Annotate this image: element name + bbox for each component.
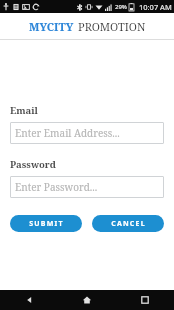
staticText: 29% xyxy=(115,3,127,11)
staticText: Password xyxy=(10,158,56,171)
button[interactable]: CANCEL xyxy=(92,215,164,232)
staticText: 10:07 AM xyxy=(139,2,172,12)
staticText: MYCITY xyxy=(29,19,74,34)
staticText: PROMOTION xyxy=(78,19,146,34)
button[interactable]: Enter Password... xyxy=(10,176,164,198)
button[interactable]: SUBMIT xyxy=(10,215,82,232)
staticText: Enter Password... xyxy=(15,180,98,194)
staticText: Email xyxy=(10,104,38,117)
staticText: Enter Email Address... xyxy=(15,126,120,140)
button[interactable]: Enter Email Address... xyxy=(10,122,164,144)
button[interactable]: Back xyxy=(0,290,58,310)
button[interactable]: Recents xyxy=(116,290,174,310)
staticText: CANCEL xyxy=(111,219,146,229)
staticText: SUBMIT xyxy=(29,219,64,229)
button[interactable]: Home xyxy=(58,290,116,310)
